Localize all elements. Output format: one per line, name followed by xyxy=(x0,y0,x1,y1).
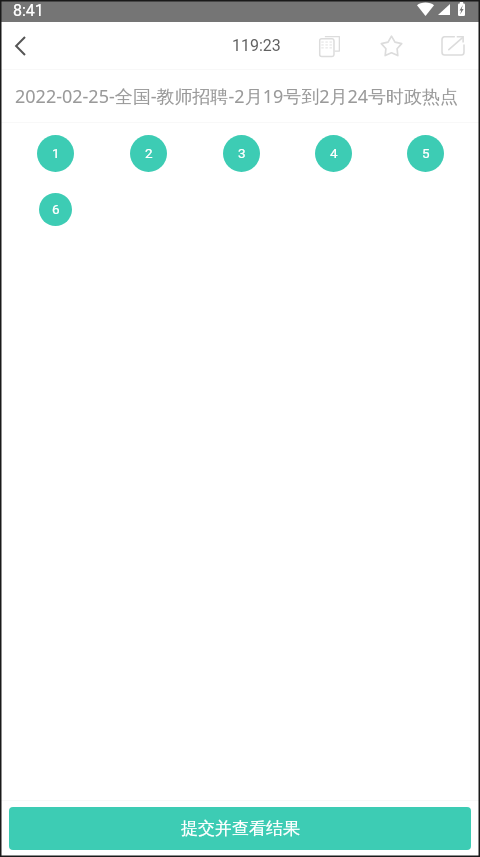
button[interactable]: 3 xyxy=(223,135,260,172)
staticText: 1 xyxy=(52,145,60,161)
button[interactable]: 1 xyxy=(37,135,74,172)
staticText: 8:41 xyxy=(13,1,44,20)
button[interactable]: 2 xyxy=(130,135,167,172)
staticText: 提交并查看结果 xyxy=(181,818,300,839)
button[interactable]: 4 xyxy=(315,135,352,172)
button[interactable]: 提交并查看结果 xyxy=(9,807,471,850)
button[interactable]: Back xyxy=(0,22,40,69)
staticText: 2 xyxy=(145,145,153,161)
button[interactable]: 5 xyxy=(407,135,444,172)
staticText: 6 xyxy=(52,201,60,217)
button[interactable]: 6 xyxy=(39,193,72,226)
button[interactable]: Favorite xyxy=(360,22,422,69)
staticText: 2022-02-25-全国-教师招聘-2月19号到2月24号时政热点 xyxy=(15,84,459,109)
button[interactable]: Answer card xyxy=(298,22,360,69)
button[interactable]: Share xyxy=(422,22,480,69)
staticText: 4 xyxy=(330,145,338,161)
staticText: 3 xyxy=(238,145,246,161)
staticText: 5 xyxy=(422,145,430,161)
staticText: 119:23 xyxy=(232,36,281,55)
